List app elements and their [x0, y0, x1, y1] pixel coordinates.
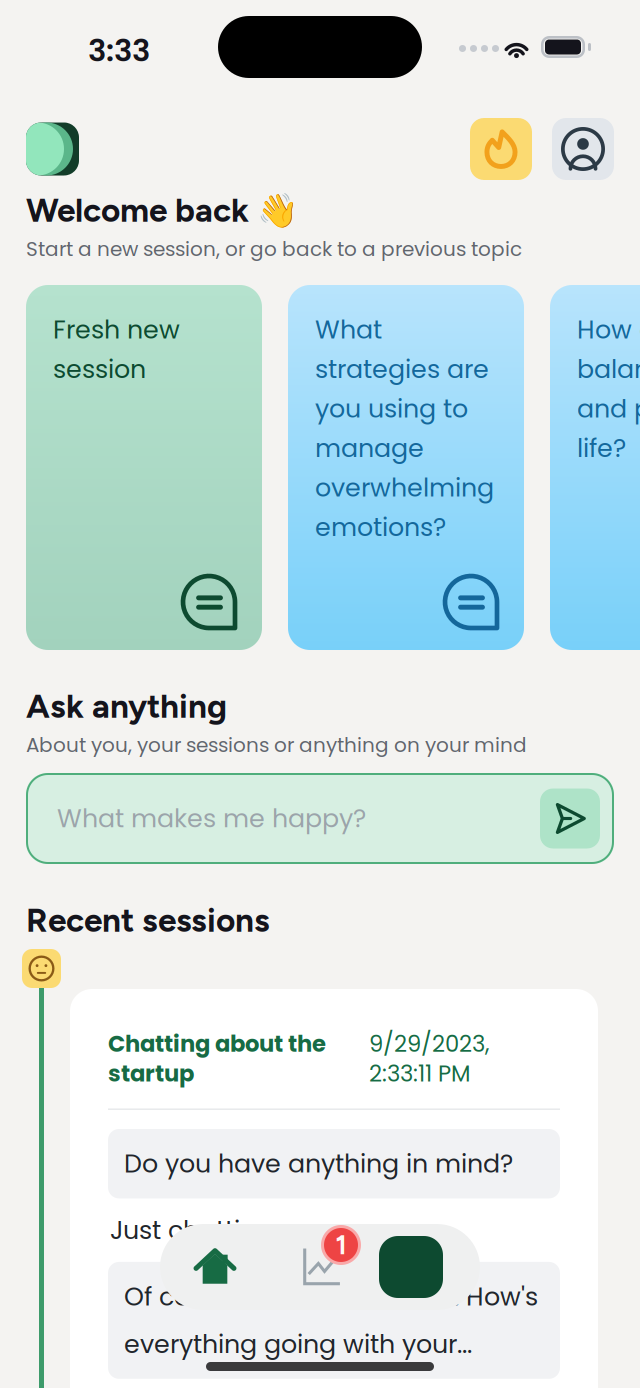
- staticText: Ask anything: [26, 686, 227, 726]
- button[interactable]: Home: [26, 122, 79, 175]
- button[interactable]: Account: [552, 118, 614, 180]
- staticText: Do you have anything in mind?: [124, 1146, 513, 1181]
- staticText: Of course, I'm here for that. How's ever…: [124, 1279, 538, 1362]
- staticText: How do you balance work and personal lif…: [577, 312, 640, 466]
- button[interactable]: Insights: [285, 1224, 357, 1310]
- staticText: Recent sessions: [26, 900, 270, 940]
- staticText: Chatting about the: [108, 1028, 326, 1060]
- staticText: 3:33: [88, 29, 150, 72]
- button[interactable]: What strategies are you using to manage …: [288, 285, 524, 650]
- staticText: About you, your sessions or anything on …: [26, 731, 527, 759]
- button[interactable]: New session: [375, 1224, 447, 1310]
- staticText: 1: [335, 1229, 346, 1261]
- staticText: 9/29/2023,: [369, 1028, 489, 1060]
- button[interactable]: What makes me happy?: [26, 773, 614, 864]
- staticText: What strategies are you using to manage …: [315, 312, 494, 545]
- button[interactable]: Home: [179, 1224, 251, 1310]
- button[interactable]: Fresh new session: [26, 285, 262, 650]
- staticText: Start a new session, or go back to a pre…: [26, 235, 522, 263]
- button[interactable]: How do you balance work and personal lif…: [550, 285, 640, 650]
- staticText: startup: [108, 1058, 194, 1089]
- staticText: What makes me happy?: [57, 801, 366, 836]
- staticText: 2:33:11 PM: [369, 1058, 471, 1089]
- button[interactable]: Streak: [470, 118, 532, 180]
- staticText: Fresh new session: [53, 312, 180, 387]
- staticText: Just chatting: [110, 1212, 273, 1248]
- staticText: Welcome back 👋: [26, 190, 299, 230]
